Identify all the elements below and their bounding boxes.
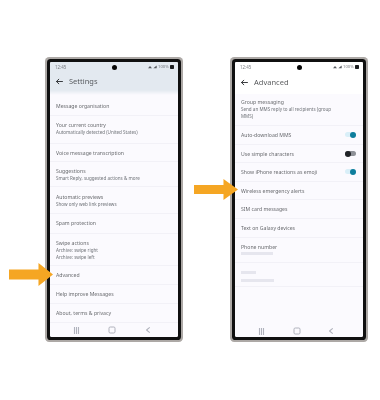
button[interactable]: Back: [53, 75, 65, 87]
button[interactable]: Home: [291, 325, 303, 337]
staticText: 100%: [343, 64, 354, 70]
staticText: 100%: [158, 64, 169, 70]
staticText: Auto-download MMS: [241, 131, 292, 138]
staticText: Text on Galaxy devices: [241, 224, 296, 231]
staticText: Show only web link previews: [56, 201, 117, 207]
button[interactable]: Auto-download MMS: [345, 130, 356, 139]
button[interactable]: Home: [106, 324, 118, 336]
staticText: Automatically detected (United States): [56, 129, 138, 135]
staticText: Archive: swipe right: [56, 247, 98, 253]
staticText: Use simple characters: [241, 150, 295, 157]
staticText: Group messaging: [241, 98, 284, 105]
staticText: Show iPhone reactions as emoji: [241, 168, 318, 175]
button[interactable]: Recent apps: [255, 325, 267, 337]
other: Arrow pointing to Advanced: [9, 263, 53, 286]
staticText: Archive: swipe left: [56, 254, 95, 260]
staticText: Settings: [69, 76, 98, 86]
staticText: MMS): [241, 113, 254, 119]
staticText: Advanced: [56, 271, 80, 278]
staticText: Voice message transcription: [56, 149, 124, 156]
button[interactable]: Show iPhone reactions as emoji: [345, 167, 356, 176]
button[interactable]: Back: [325, 325, 337, 337]
staticText: Your current country: [56, 121, 106, 128]
staticText: Advanced: [254, 77, 289, 87]
button[interactable]: Back: [142, 324, 154, 336]
staticText: Wireless emergency alerts: [241, 187, 305, 194]
staticText: Send an MMS reply to all recipients (gro…: [241, 106, 332, 112]
staticText: SIM card messages: [241, 205, 288, 212]
staticText: Suggestions: [56, 167, 86, 174]
staticText: Smart Reply, suggested actions & more: [56, 175, 140, 181]
staticText: Phone number: [241, 243, 278, 250]
button[interactable]: Back: [238, 76, 250, 88]
staticText: 12:45: [55, 64, 67, 70]
staticText: Swipe actions: [56, 239, 89, 246]
staticText: Help improve Messages: [56, 290, 114, 297]
staticText: 12:45: [240, 64, 252, 70]
staticText: Message organisation: [56, 102, 110, 109]
staticText: Automatic previews: [56, 193, 104, 200]
button[interactable]: Use simple characters: [345, 149, 356, 158]
staticText: About, terms & privacy: [56, 309, 112, 316]
button[interactable]: Recent apps: [70, 324, 82, 336]
other: Arrow pointing to Wireless emergency ale…: [194, 179, 238, 200]
staticText: Spam protection: [56, 219, 96, 226]
